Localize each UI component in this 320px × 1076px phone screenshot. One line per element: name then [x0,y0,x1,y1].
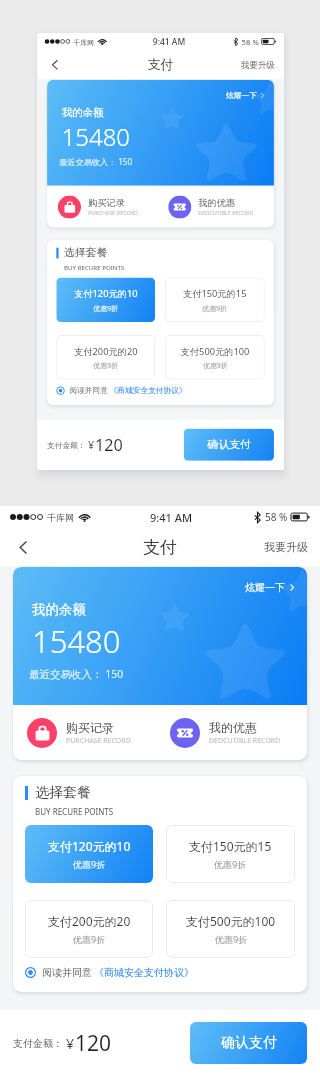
staticText: 我要升级 [264,540,308,554]
button[interactable]: 支付120元的10 [25,825,153,883]
button[interactable]: 支付150元的15 [166,825,295,883]
staticText: 选择套餐 [64,246,107,260]
button[interactable]: 购买记录 [47,195,160,218]
staticText: 优惠9折 [215,933,248,945]
staticText: 优惠9折 [93,303,119,312]
staticText: BUY RECURE POINTS [64,263,125,271]
staticText: 最近交易收入： 150 [59,156,133,167]
staticText: 支付200元的20 [48,913,131,929]
button[interactable]: 阅读并同意 [56,383,187,398]
staticText: 支付500元的100 [181,345,250,357]
button[interactable]: 我的优惠 [160,195,274,218]
staticText: 炫耀一下 [245,581,285,594]
staticText: 优惠9折 [203,360,228,370]
staticText: 最近交易收入： 150 [29,667,124,681]
staticText: 优惠9折 [73,858,106,870]
button[interactable]: 我的优惠 [160,718,307,748]
button[interactable]: 支付150元的15 [165,278,265,322]
button[interactable]: 购买记录 [13,718,160,748]
button[interactable]: 炫耀一下 [237,567,307,602]
button[interactable]: 确认支付 [184,429,274,461]
staticText: 120 [75,1029,112,1058]
staticText: 9:41 AM [153,36,186,48]
staticText: 确认支付 [208,438,251,452]
staticText: 15480 [62,120,130,153]
staticText: 购买记录 [66,720,114,735]
staticText: 我要升级 [241,59,275,70]
staticText: 《商城安全支付协议》 [110,386,187,396]
staticText: 支付金额： [47,440,86,450]
staticText: 支付 [143,537,177,558]
staticText: ¥ [88,438,95,452]
button[interactable]: Back [42,51,68,77]
staticText: 优惠9折 [93,360,119,370]
staticText: 58 % [265,510,288,524]
staticText: 支付120元的10 [74,287,138,300]
staticText: BUY RECURE POINTS [35,806,114,817]
button[interactable]: 我要升级 [252,530,320,564]
staticText: 阅读并同意 [69,386,108,396]
button[interactable]: 确认支付 [190,1022,307,1064]
staticText: 120 [95,434,123,456]
staticText: 我的余额 [32,601,86,618]
staticText: 优惠9折 [202,303,228,312]
staticText: 我的优惠 [198,197,235,209]
staticText: 确认支付 [221,1034,277,1052]
staticText: 支付金额： [13,1037,63,1050]
button[interactable]: Back [6,530,40,564]
staticText: 支付150元的15 [189,838,272,854]
staticText: 《商城安全支付协议》 [94,966,194,979]
staticText: 支付200元的20 [74,345,138,357]
staticText: PURCHASE RECORD [66,736,131,746]
staticText: 支付 [147,57,174,73]
staticText: DEDCUTIBLE RECORD [198,209,254,217]
staticText: 支付500元的100 [186,913,276,929]
staticText: 阅读并同意 [42,966,92,979]
button[interactable]: 支付200元的20 [25,900,153,958]
staticText: DEDCUTIBLE RECORD [209,736,281,746]
staticText: 炫耀一下 [226,90,257,100]
staticText: 58 % [241,36,259,47]
staticText: 千库网 [73,38,94,46]
staticText: 9:41 AM [150,510,193,525]
staticText: 购买记录 [88,197,125,209]
button[interactable]: 支付120元的10 [56,278,155,322]
staticText: 15480 [32,620,121,662]
button[interactable]: 支付500元的100 [166,900,295,958]
staticText: 支付150元的15 [183,287,247,300]
button[interactable]: 我要升级 [231,51,284,77]
staticText: 优惠9折 [73,933,106,945]
staticText: 选择套餐 [35,784,91,802]
staticText: PURCHASE RECORD [88,209,138,217]
button[interactable]: 阅读并同意 [25,963,194,982]
staticText: 千库网 [47,512,74,523]
staticText: ¥ [66,1034,75,1053]
button[interactable]: 支付500元的100 [165,335,265,380]
button[interactable]: 支付200元的20 [56,335,155,380]
button[interactable]: 炫耀一下 [220,80,274,107]
staticText: 我的余额 [62,106,103,119]
staticText: 支付120元的10 [48,838,131,854]
staticText: 优惠9折 [214,858,247,870]
staticText: 我的优惠 [209,720,257,735]
